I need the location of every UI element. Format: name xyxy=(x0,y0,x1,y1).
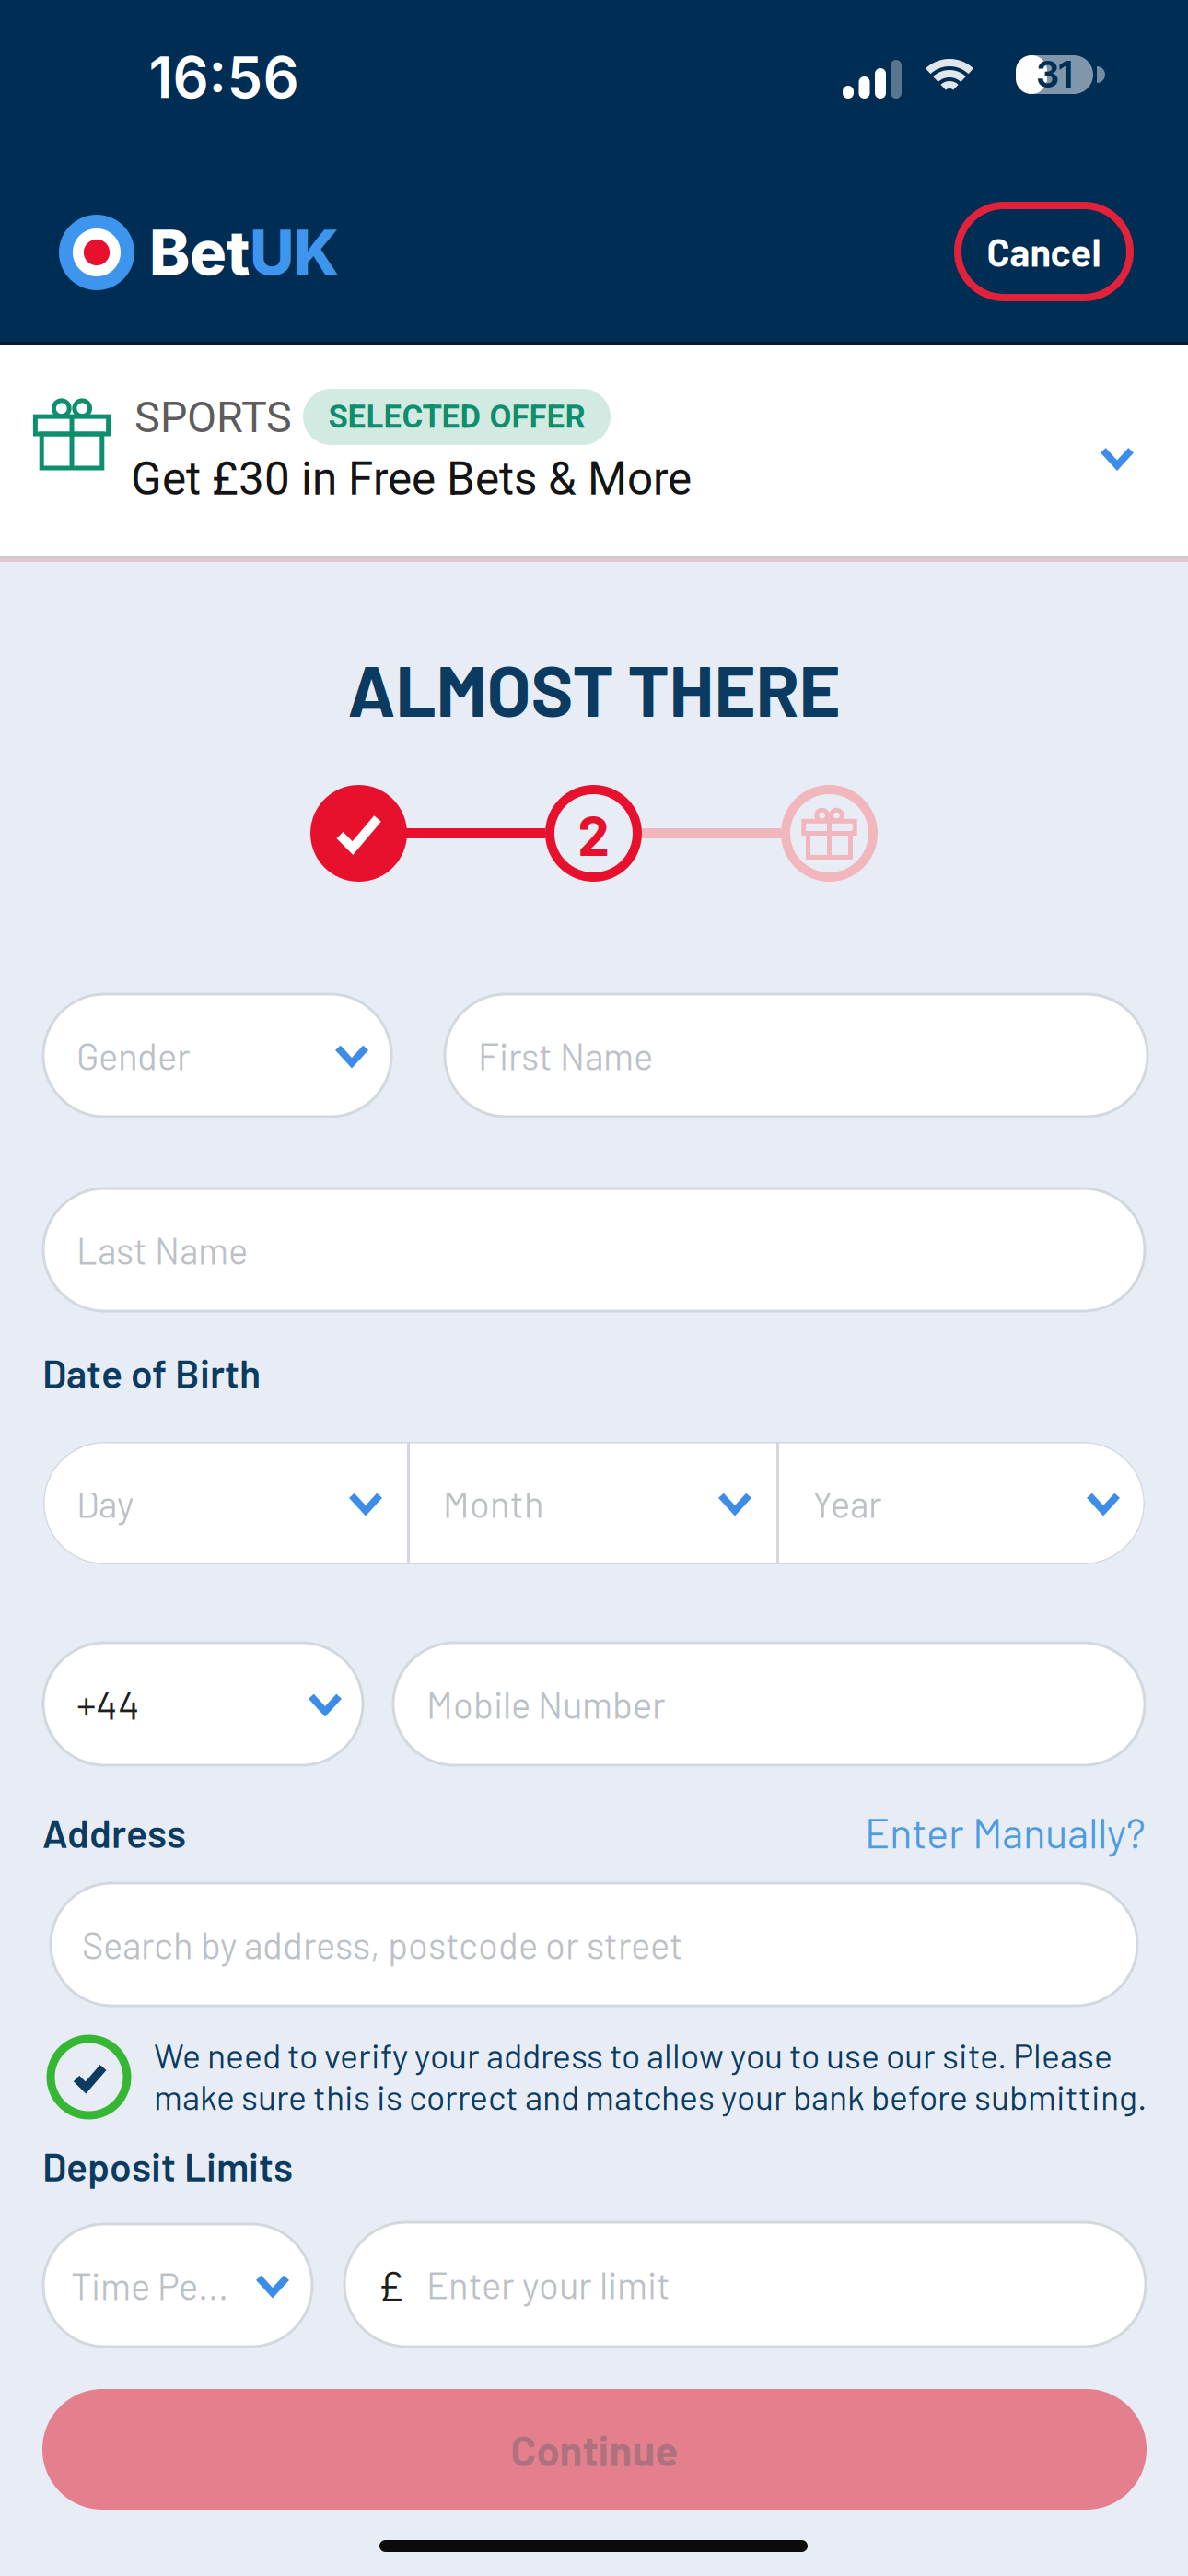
staticText: Enter Manually? xyxy=(865,1807,1146,1857)
button[interactable]: +44 xyxy=(43,1643,363,1765)
staticText: Continue xyxy=(511,2424,678,2474)
staticText: Enter your limit xyxy=(426,2262,670,2307)
staticText: We need to verify your address to allow … xyxy=(154,2034,1147,2117)
staticText: 16:56 xyxy=(149,43,299,112)
staticText: Deposit Limits xyxy=(42,2142,293,2189)
staticText: Search by address, postcode or street xyxy=(82,1922,683,1967)
staticText: 2 xyxy=(578,799,609,867)
staticText: Date of Birth xyxy=(42,1349,261,1396)
staticText: ALMOST THERE xyxy=(348,645,840,731)
button[interactable]: SPORTS xyxy=(0,345,1188,561)
button[interactable]: Cancel xyxy=(958,205,1130,298)
staticText: Mobile Number xyxy=(426,1682,666,1726)
staticText: UK xyxy=(250,215,339,290)
button[interactable]: Time Pe... xyxy=(43,2224,312,2347)
staticText: Month xyxy=(443,1481,544,1525)
staticText: Year xyxy=(812,1481,882,1525)
staticText: Last Name xyxy=(76,1228,248,1272)
staticText: Day xyxy=(76,1481,134,1525)
staticText: Gender xyxy=(76,1033,191,1077)
button[interactable]: Last Name xyxy=(43,1188,1145,1311)
staticText: SELECTED OFFER xyxy=(328,398,585,436)
staticText: Address xyxy=(42,1809,186,1856)
staticText: Time Pe... xyxy=(71,2263,228,2307)
staticText: Get £30 in Free Bets & More xyxy=(131,452,692,506)
staticText: Cancel xyxy=(987,229,1101,274)
button[interactable]: Search by address, postcode or street xyxy=(51,1883,1137,2006)
staticText: First Name xyxy=(478,1033,653,1077)
staticText: SPORTS xyxy=(134,392,292,443)
button[interactable]: Gender xyxy=(43,994,391,1117)
staticText: 31 xyxy=(1037,53,1072,96)
staticText: +44 xyxy=(76,1680,140,1728)
button[interactable]: Mobile Number xyxy=(393,1643,1145,1765)
staticText: £ xyxy=(378,2259,402,2309)
button[interactable]: Enter Manually? xyxy=(796,1809,1146,1855)
button[interactable]: First Name xyxy=(445,994,1147,1117)
staticText: Bet xyxy=(149,215,250,290)
button[interactable]: Continue xyxy=(42,2389,1147,2510)
